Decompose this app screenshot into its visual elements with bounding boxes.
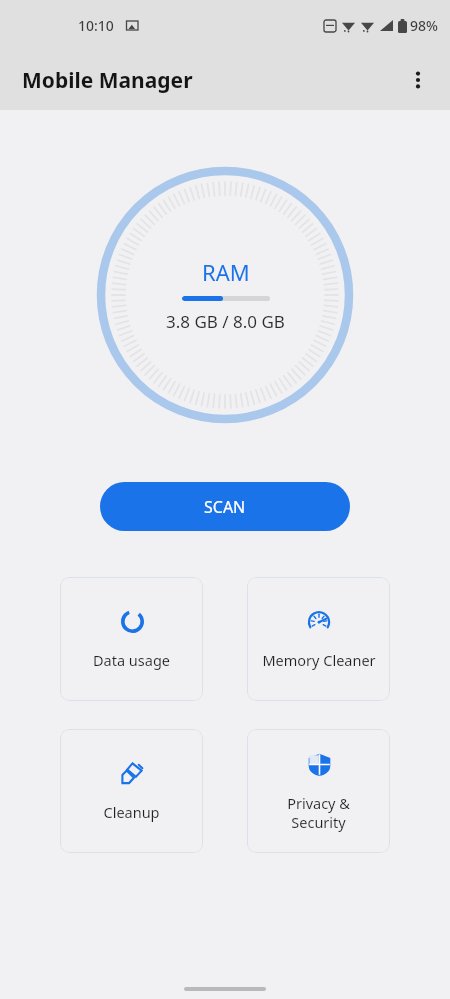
staticText: Privacy & Security: [287, 793, 350, 832]
staticText: Data usage: [93, 650, 170, 670]
button[interactable]: Cleanup: [60, 729, 203, 853]
staticText: RAM: [202, 257, 250, 287]
staticText: 10:10: [78, 16, 114, 35]
button[interactable]: Privacy & Security: [247, 729, 390, 853]
staticText: SCAN: [204, 496, 246, 518]
staticText: Memory Cleaner: [262, 650, 376, 670]
staticText: 3.8 GB / 8.0 GB: [166, 310, 285, 333]
button[interactable]: More options: [396, 58, 440, 102]
staticText: Mobile Manager: [22, 66, 193, 95]
button[interactable]: SCAN: [100, 482, 350, 531]
button[interactable]: Memory Cleaner: [247, 577, 390, 701]
staticText: 98%: [410, 16, 438, 35]
button[interactable]: Data usage: [60, 577, 203, 701]
staticText: Cleanup: [103, 802, 160, 822]
